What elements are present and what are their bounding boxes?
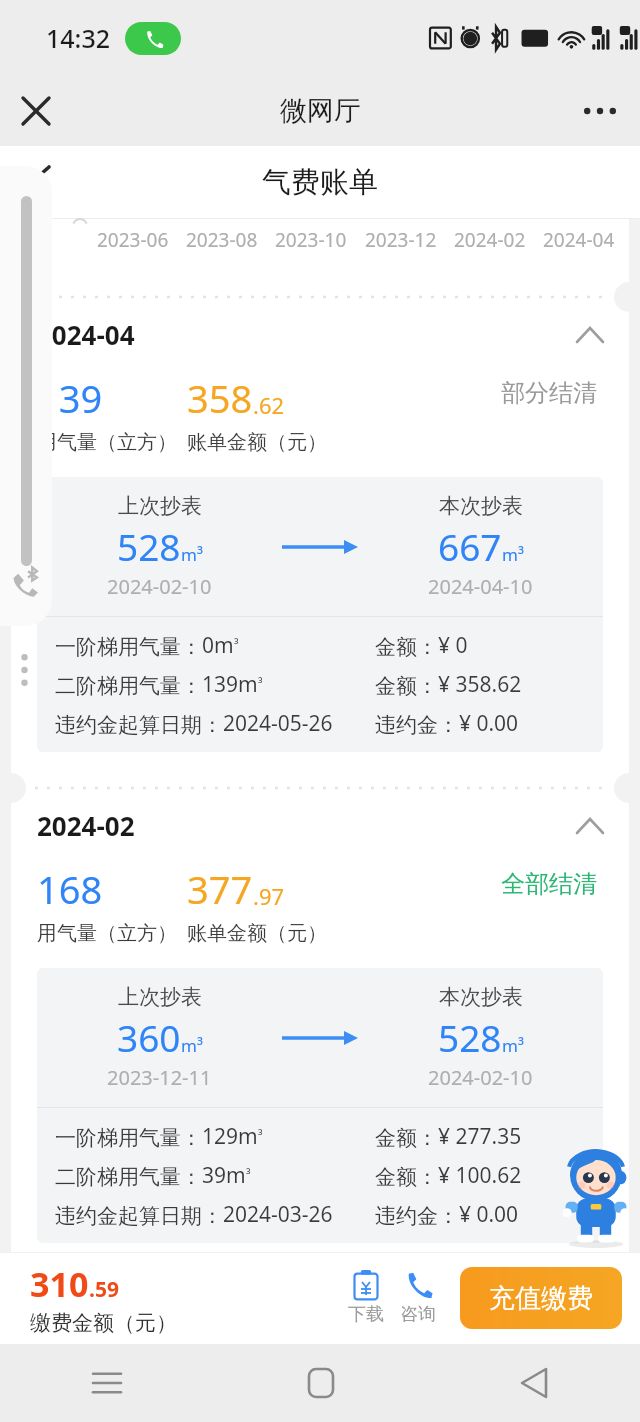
staticText: 违约金起算日期： [55, 712, 223, 738]
staticText: 310 [30, 1261, 89, 1307]
staticText: 139m [202, 670, 258, 699]
staticText: 全部结清 [501, 869, 597, 899]
staticText: 2024-04 [543, 227, 615, 253]
staticText: 360 [117, 1012, 181, 1062]
staticText: 2024-03-26 [223, 1200, 333, 1229]
staticText: 2023-12-11 [107, 1064, 212, 1091]
staticText: ³ [246, 1165, 251, 1183]
button[interactable]: 充值缴费 [460, 1267, 622, 1329]
staticText: 金额： [375, 1164, 438, 1190]
staticText: 一阶梯用气量： [55, 634, 202, 660]
staticText: 2024-02-10 [428, 1064, 533, 1091]
button[interactable]: Home [214, 1344, 427, 1422]
staticText: ¥ 0.00 [459, 1200, 519, 1229]
staticText: 缴费金额（元） [30, 1310, 177, 1336]
button[interactable]: More options [572, 83, 628, 139]
staticText: 139 [37, 372, 103, 424]
staticText: ¥ 0 [438, 631, 468, 660]
staticText: 充值缴费 [489, 1282, 593, 1315]
staticText: 金额： [375, 1125, 438, 1151]
staticText: 上次抄表 [118, 984, 202, 1010]
staticText: 168 [37, 863, 103, 915]
staticText: ¥ 0.00 [459, 709, 519, 738]
staticText: .97 [253, 881, 285, 911]
staticText: .62 [253, 390, 285, 420]
staticText: 0m [202, 631, 234, 660]
button[interactable]: Close [8, 83, 64, 139]
staticText: 14:32 [46, 21, 111, 55]
staticText: 2023-06 [97, 227, 169, 253]
staticText: 用气量（立方） [37, 921, 177, 946]
staticText: 129m [202, 1122, 258, 1151]
staticText: 2024-02-10 [107, 573, 212, 600]
staticText: .59 [89, 1275, 119, 1304]
button[interactable]: Back [427, 1344, 640, 1422]
button[interactable]: Back [12, 154, 68, 210]
staticText: 部分结清 [501, 378, 597, 408]
staticText: 下载 [348, 1303, 384, 1326]
staticText: 本次抄表 [439, 984, 523, 1010]
staticText: ¥ 100.62 [438, 1161, 522, 1190]
staticText: 2023-12 [365, 227, 437, 253]
staticText: 金额： [375, 634, 438, 660]
staticText: 528 [117, 521, 181, 571]
staticText: 528 [438, 1012, 502, 1062]
button[interactable]: 2024-02 [11, 802, 629, 849]
button[interactable]: Recent apps [0, 1344, 214, 1422]
staticText: 667 [438, 521, 502, 571]
staticText: 上次抄表 [118, 493, 202, 519]
staticText: 39m [202, 1161, 246, 1190]
staticText: 377 [187, 863, 253, 915]
staticText: ¥ 358.62 [438, 670, 522, 699]
staticText: 2024-02 [37, 808, 135, 843]
staticText: 气费账单 [262, 164, 378, 201]
staticText: m³ [502, 543, 524, 566]
staticText: 违约金： [375, 712, 459, 738]
staticText: 一阶梯用气量： [55, 1125, 202, 1151]
staticText: 2024-04-10 [428, 573, 533, 600]
staticText: 违约金： [375, 1203, 459, 1229]
staticText: 2023-08 [186, 227, 258, 253]
button[interactable]: 2024-04 [11, 311, 629, 358]
staticText: ³ [234, 635, 239, 653]
staticText: 违约金起算日期： [55, 1203, 223, 1229]
staticText: m³ [181, 1034, 203, 1057]
staticText: 账单金额（元） [187, 430, 327, 455]
staticText: 358 [187, 372, 253, 424]
staticText: 微网厅 [280, 94, 361, 128]
staticText: 本次抄表 [439, 493, 523, 519]
staticText: m³ [181, 543, 203, 566]
button[interactable]: 咨询 [392, 1270, 444, 1326]
staticText: m³ [502, 1034, 524, 1057]
button[interactable]: Panel menu [6, 652, 42, 688]
staticText: 2024-02 [454, 227, 526, 253]
button[interactable]: 下载 [340, 1270, 392, 1326]
staticText: 二阶梯用气量： [55, 1164, 202, 1190]
staticText: 用气量（立方） [37, 430, 177, 455]
button[interactable]: Bluetooth call [6, 560, 46, 600]
staticText: 2024-04 [37, 317, 135, 352]
staticText: ³ [258, 1126, 263, 1144]
staticText: 金额： [375, 673, 438, 699]
staticText: 2023-10 [275, 227, 347, 253]
staticText: 二阶梯用气量： [55, 673, 202, 699]
staticText: ¥ 277.35 [438, 1122, 522, 1151]
staticText: 2024-05-26 [223, 709, 333, 738]
staticText: 咨询 [400, 1303, 436, 1326]
staticText: 账单金额（元） [187, 921, 327, 946]
staticText: ³ [258, 674, 263, 692]
